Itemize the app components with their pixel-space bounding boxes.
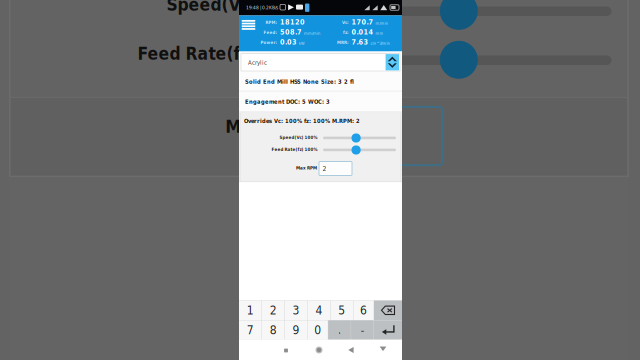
staticText: 1 xyxy=(247,303,254,317)
staticText: Speed(Vc) 100% xyxy=(279,135,317,140)
button[interactable]: Backspace xyxy=(374,301,402,320)
button[interactable]: 6 xyxy=(353,301,374,320)
staticText: 0.014 xyxy=(352,28,374,36)
button[interactable]: 2 xyxy=(262,301,284,320)
button[interactable]: Solid End Mill HSS None Size: 3 2 fl xyxy=(239,72,402,91)
staticText: - xyxy=(361,324,364,336)
button[interactable]: 7 xyxy=(239,320,261,340)
button[interactable]: . xyxy=(328,320,351,340)
staticText: 508.7 xyxy=(280,28,302,36)
staticText: Feed Rate(fz) 100% xyxy=(271,147,317,152)
staticText: Feed Rate(fz) 100% xyxy=(137,44,310,64)
button[interactable]: Acrylic xyxy=(241,53,400,71)
button[interactable]: Engagement DOC: 5 WOC: 3 xyxy=(239,92,402,112)
staticText: Max RPM xyxy=(225,116,308,137)
staticText: 18120 xyxy=(280,18,305,26)
button[interactable]: Back xyxy=(346,345,358,355)
staticText: cm^3/min xyxy=(371,41,390,46)
staticText: 2 xyxy=(270,303,277,317)
staticText: mm/min xyxy=(304,31,320,36)
staticText: 0.03 xyxy=(280,38,297,46)
staticText: RPM: xyxy=(265,20,277,25)
staticText: m/min xyxy=(376,21,388,26)
staticText: 9 xyxy=(293,323,300,337)
staticText: Overrides Vc: 100% fz: 100% M.RPM: 2 xyxy=(244,118,360,124)
staticText: Vc: xyxy=(342,20,349,25)
staticText: 6 xyxy=(360,303,367,317)
staticText: 0 xyxy=(314,323,321,337)
staticText: Max RPM xyxy=(296,165,317,171)
staticText: mm xyxy=(376,31,384,36)
staticText: fz: xyxy=(343,30,349,35)
button[interactable]: 1 xyxy=(239,301,261,320)
button[interactable]: 3 xyxy=(285,301,307,320)
button[interactable]: 8 xyxy=(262,320,284,340)
staticText: Solid End Mill HSS None Size: 3 2 fl xyxy=(245,78,354,85)
button[interactable]: 2 xyxy=(319,161,352,175)
button[interactable]: Menu xyxy=(241,19,255,31)
staticText: 8 xyxy=(270,323,277,337)
staticText: MRR: xyxy=(337,40,349,45)
button[interactable]: 0 xyxy=(308,320,328,340)
staticText: kW xyxy=(299,41,305,46)
staticText: Power: xyxy=(260,40,277,45)
staticText: 19:48 | 0.2KB/s xyxy=(246,5,278,10)
button[interactable]: Home xyxy=(313,344,325,356)
staticText: 4 xyxy=(315,303,322,317)
button[interactable]: 4 xyxy=(308,301,330,320)
staticText: Speed(Vc) 100% xyxy=(166,0,310,15)
staticText: Feed: xyxy=(263,30,277,35)
button[interactable]: Recents xyxy=(280,345,292,356)
staticText: Acrylic xyxy=(248,59,267,66)
button[interactable]: 5 xyxy=(331,301,353,320)
staticText: 7.63 xyxy=(352,38,369,46)
staticText: Engagement DOC: 5 WOC: 3 xyxy=(245,98,330,105)
staticText: 170.7 xyxy=(352,18,374,26)
staticText: . xyxy=(338,324,341,336)
button[interactable]: Return xyxy=(374,320,402,340)
button[interactable]: - xyxy=(351,320,374,340)
staticText: 3 xyxy=(293,303,300,317)
button[interactable]: 9 xyxy=(285,320,307,340)
staticText: 2 xyxy=(322,165,326,173)
staticText: 5 xyxy=(338,303,345,317)
button[interactable]: Hide keyboard xyxy=(377,344,389,355)
staticText: 7 xyxy=(247,323,254,337)
